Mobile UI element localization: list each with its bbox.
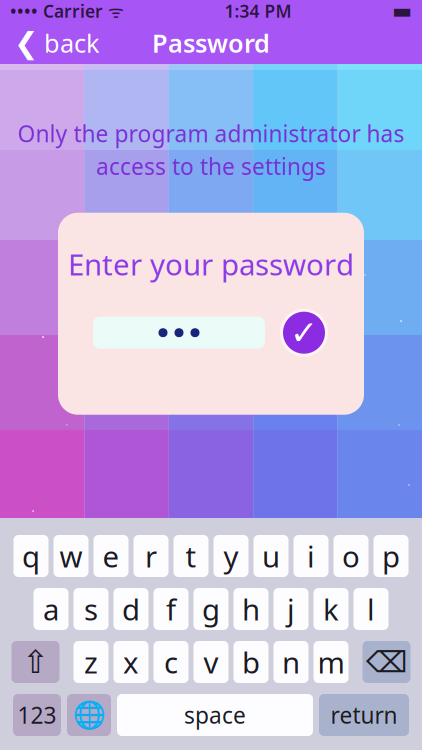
staticText: t: [185, 536, 196, 575]
button[interactable]: t: [173, 535, 208, 577]
button[interactable]: m: [313, 641, 348, 683]
staticText: ✓: [290, 314, 318, 352]
button[interactable]: g: [193, 588, 228, 630]
staticText: Enter your password: [68, 245, 354, 284]
staticText: f: [166, 589, 176, 628]
staticText: y: [223, 536, 238, 575]
staticText: 🌐: [72, 700, 105, 730]
button[interactable]: x: [113, 641, 148, 683]
staticText: return: [330, 700, 397, 730]
staticText: x: [123, 642, 139, 681]
staticText: n: [282, 642, 300, 681]
staticText: d: [122, 589, 140, 628]
button[interactable]: n: [273, 641, 308, 683]
button[interactable]: f: [153, 588, 188, 630]
staticText: v: [203, 642, 218, 681]
staticText: Only the program administrator has: [17, 118, 404, 149]
staticText: k: [323, 589, 339, 628]
staticText: 123: [17, 700, 56, 730]
staticText: q: [22, 536, 40, 575]
staticText: j: [287, 589, 295, 628]
button[interactable]: z: [73, 641, 108, 683]
staticText: m: [317, 642, 344, 681]
button[interactable]: p: [373, 535, 408, 577]
staticText: w: [59, 536, 82, 575]
button[interactable]: b: [233, 641, 268, 683]
button[interactable]: o: [333, 535, 368, 577]
staticText: g: [202, 589, 220, 628]
button[interactable]: Shift: [11, 641, 59, 683]
button[interactable]: Confirm password: [279, 308, 329, 358]
button[interactable]: e: [93, 535, 128, 577]
button[interactable]: u: [253, 535, 288, 577]
button[interactable]: c: [153, 641, 188, 683]
staticText: h: [242, 589, 260, 628]
button[interactable]: j: [273, 588, 308, 630]
staticText: p: [382, 536, 400, 575]
staticText: c: [164, 642, 178, 681]
button[interactable]: ❮: [0, 22, 114, 64]
button[interactable]: space: [117, 694, 313, 736]
staticText: z: [84, 642, 98, 681]
staticText: u: [262, 536, 280, 575]
button[interactable]: k: [313, 588, 348, 630]
staticText: r: [145, 536, 157, 575]
staticText: ⌫: [366, 645, 407, 679]
staticText: s: [84, 589, 98, 628]
staticText: •••• Carrier ᯤ: [10, 0, 124, 22]
staticText: a: [43, 589, 59, 628]
button[interactable]: Delete: [362, 641, 410, 683]
staticText: ❮: [14, 26, 39, 60]
button[interactable]: v: [193, 641, 228, 683]
staticText: l: [367, 589, 375, 628]
button[interactable]: a: [33, 588, 68, 630]
staticText: b: [242, 642, 260, 681]
staticText: ⇧: [22, 644, 49, 680]
staticText: ▬: [392, 0, 412, 23]
button[interactable]: i: [293, 535, 328, 577]
staticText: o: [342, 536, 360, 575]
button[interactable]: r: [133, 535, 168, 577]
button[interactable]: q: [13, 535, 48, 577]
staticText: 1:34 PM: [224, 0, 291, 22]
staticText: e: [102, 536, 119, 575]
staticText: access to the settings: [96, 151, 326, 182]
staticText: back: [44, 26, 100, 60]
button[interactable]: 123: [13, 694, 61, 736]
button[interactable]: return: [319, 694, 409, 736]
button[interactable]: w: [53, 535, 88, 577]
staticText: i: [307, 536, 315, 575]
button[interactable]: y: [213, 535, 248, 577]
button[interactable]: d: [113, 588, 148, 630]
button[interactable]: s: [73, 588, 108, 630]
button[interactable]: l: [353, 588, 388, 630]
button[interactable]: h: [233, 588, 268, 630]
staticText: space: [184, 700, 246, 730]
button[interactable]: Next keyboard: [67, 694, 111, 736]
staticText: Password: [152, 26, 270, 60]
